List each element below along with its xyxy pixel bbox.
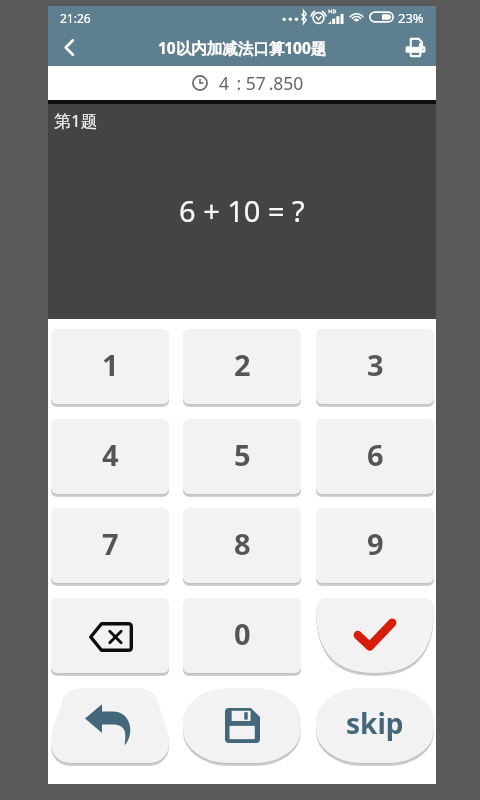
staticText: 6 [367,435,384,474]
button[interactable]: 7 [51,508,169,587]
staticText: 1 [102,345,119,384]
button[interactable]: skip [316,688,434,767]
staticText: 23% [398,9,424,27]
staticText: 21:26 [60,10,91,26]
staticText: 0 [234,614,251,653]
staticText: 4 [102,435,119,474]
staticText: 9 [367,524,384,563]
button[interactable]: Print [394,28,436,66]
button[interactable]: 1 [51,329,169,408]
staticText: skip [346,704,404,742]
button[interactable]: 3 [316,329,434,408]
button[interactable]: 2 [183,329,301,408]
staticText: 2 [234,345,251,384]
button[interactable]: Back [48,28,90,66]
button[interactable]: 4 [51,419,169,498]
staticText: 7 [102,524,119,563]
button[interactable]: 6 [316,419,434,498]
button[interactable]: 8 [183,508,301,587]
staticText: 6 + 10 = ? [179,191,305,230]
button[interactable]: 9 [316,508,434,587]
staticText: 8 [234,524,251,563]
button[interactable]: Submit answer [316,598,434,677]
button[interactable]: 0 [183,598,301,677]
staticText: 3 [367,345,384,384]
staticText: 4 : 57 .850 [219,71,304,95]
button[interactable]: Backspace [51,598,169,677]
button[interactable]: Undo [51,688,169,767]
button[interactable]: Save [183,688,301,767]
staticText: 10以内加减法口算100题 [158,37,327,58]
staticText: 5 [234,435,251,474]
staticText: 第1题 [54,109,98,132]
button[interactable]: 5 [183,419,301,498]
